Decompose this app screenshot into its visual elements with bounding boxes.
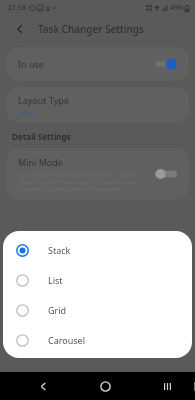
staticText: Grid	[48, 304, 67, 316]
button[interactable]: Stack	[3, 235, 192, 265]
button[interactable]: Carousel	[3, 325, 192, 355]
button[interactable]: Mini Mode toggle	[155, 168, 177, 180]
staticText: In use	[18, 58, 44, 70]
button[interactable]: Mini Mode	[6, 148, 189, 200]
staticText: Stack	[18, 109, 36, 119]
staticText: Task Changer Settings	[38, 22, 144, 36]
button[interactable]: Layout Type	[6, 87, 189, 123]
button[interactable]: In use	[6, 47, 189, 81]
staticText: Detail Settings	[12, 131, 71, 142]
button[interactable]: Home	[92, 373, 118, 399]
button[interactable]: Recent apps	[154, 373, 180, 399]
staticText: List	[48, 274, 63, 286]
staticText: 21:58	[8, 3, 26, 13]
staticText: 49%	[170, 3, 184, 13]
button[interactable]: Back	[30, 373, 56, 399]
staticText: Mini Mode	[18, 156, 63, 168]
staticText: Stack	[48, 244, 71, 256]
button[interactable]: List	[3, 265, 192, 295]
button[interactable]: Grid	[3, 295, 192, 325]
staticText: Layout Type	[18, 94, 69, 106]
button[interactable]: In use toggle	[155, 58, 177, 70]
button[interactable]: Back	[10, 19, 30, 39]
staticText: Carousel	[48, 334, 85, 346]
